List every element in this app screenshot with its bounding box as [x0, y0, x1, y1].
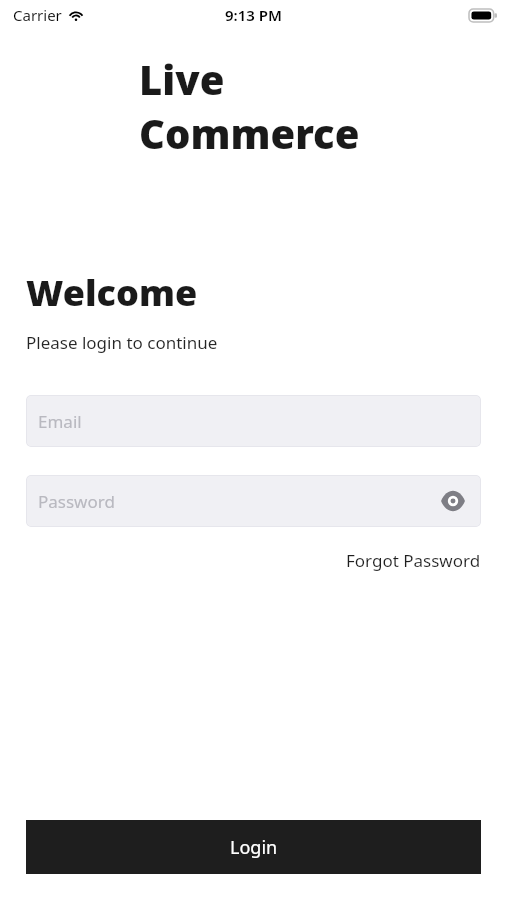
staticText: Email — [38, 410, 82, 433]
button[interactable]: Forgot Password — [26, 549, 481, 572]
button[interactable]: Login — [26, 820, 481, 874]
staticText: Carrier — [13, 5, 62, 25]
staticText: Forgot Password — [346, 549, 481, 572]
staticText: Live — [139, 52, 225, 106]
staticText: Commerce — [139, 106, 360, 160]
button[interactable]: Password — [26, 475, 481, 527]
button[interactable]: Show password — [436, 484, 470, 518]
staticText: Login — [230, 835, 278, 860]
staticText: 9:13 PM — [225, 5, 282, 25]
button[interactable]: Email — [26, 395, 481, 447]
staticText: Welcome — [26, 268, 198, 317]
staticText: Password — [38, 490, 115, 513]
staticText: Please login to continue — [26, 331, 218, 354]
